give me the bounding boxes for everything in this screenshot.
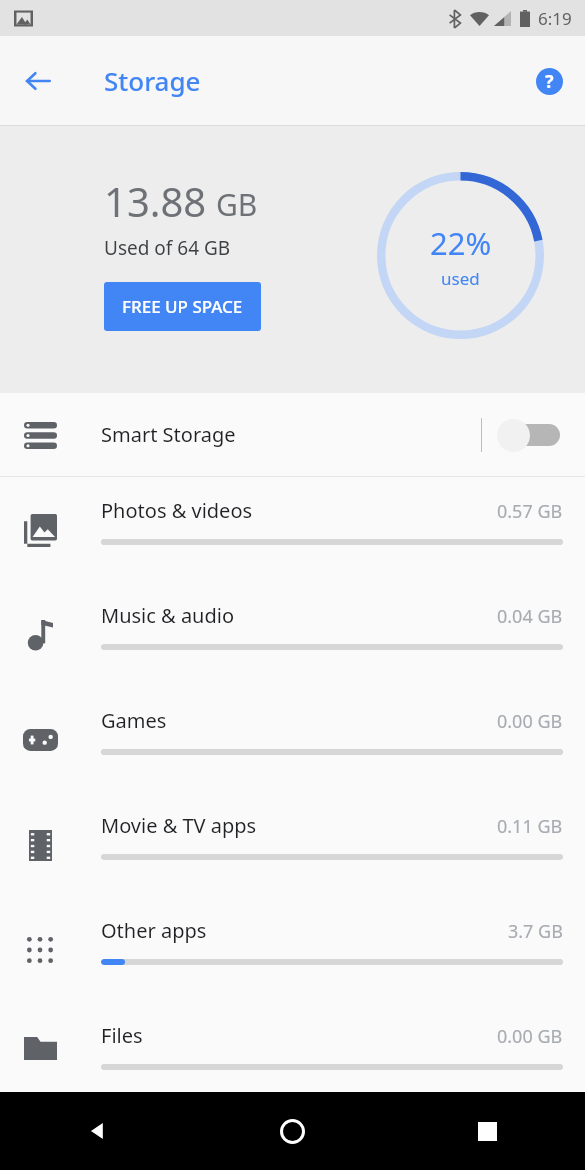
staticText: Files — [101, 1022, 143, 1049]
button[interactable]: Music & audio — [0, 582, 585, 687]
staticText: used — [441, 267, 480, 290]
button[interactable]: Back — [10, 53, 66, 109]
staticText: FREE UP SPACE — [122, 295, 243, 318]
button[interactable]: Smart Storage — [0, 393, 585, 476]
button[interactable]: Help — [525, 57, 573, 105]
staticText: 0.00 GB — [497, 709, 563, 734]
staticText: 3.7 GB — [508, 919, 563, 944]
button[interactable]: Smart Storage toggle — [497, 411, 563, 459]
staticText: Used of 64 GB — [104, 235, 231, 261]
staticText: 22% — [430, 222, 492, 264]
button[interactable]: Back — [0, 1092, 195, 1170]
button[interactable]: Files — [0, 1002, 585, 1092]
staticText: Photos & videos — [101, 497, 253, 524]
staticText: GB — [216, 184, 258, 225]
staticText: 0.00 GB — [497, 1024, 563, 1049]
staticText: Other apps — [101, 917, 207, 944]
staticText: 0.11 GB — [497, 814, 563, 839]
button[interactable]: Games — [0, 687, 585, 792]
staticText: Storage — [104, 63, 201, 98]
staticText: Music & audio — [101, 602, 235, 629]
button[interactable]: FREE UP SPACE — [104, 282, 261, 331]
staticText: ? — [545, 69, 554, 94]
button[interactable]: Home — [195, 1092, 390, 1170]
staticText: Games — [101, 707, 167, 734]
button[interactable]: Movie & TV apps — [0, 792, 585, 897]
staticText: 13.88 — [104, 174, 207, 228]
staticText: 0.57 GB — [497, 499, 563, 524]
staticText: 6:19 — [538, 7, 572, 30]
staticText: 0.04 GB — [497, 604, 563, 629]
staticText: Movie & TV apps — [101, 812, 257, 839]
button[interactable]: Recents — [390, 1092, 585, 1170]
button[interactable]: Photos & videos — [0, 477, 585, 582]
staticText: Smart Storage — [101, 421, 236, 448]
button[interactable]: Other apps — [0, 897, 585, 1002]
